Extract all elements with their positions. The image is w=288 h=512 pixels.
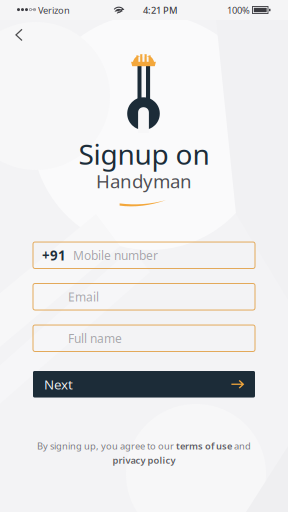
staticText: 100% — [227, 4, 250, 16]
staticText: Verizon — [38, 4, 70, 16]
staticText: Full name — [68, 330, 122, 346]
staticText: Signup on — [78, 135, 209, 173]
staticText: +91 — [42, 246, 66, 264]
staticText: Mobile number — [73, 247, 158, 263]
staticText: and — [232, 440, 251, 452]
staticText: By signing up, you agree to our — [37, 440, 176, 452]
button[interactable]: Full name — [33, 325, 255, 351]
button[interactable]: Back — [7, 25, 31, 45]
staticText: Handyman — [96, 169, 192, 193]
staticText: Next — [44, 375, 73, 393]
button[interactable]: privacy policy — [112, 454, 175, 466]
staticText: Email — [68, 289, 99, 305]
staticText: privacy policy — [112, 454, 175, 466]
staticText: 4:21 PM — [143, 4, 178, 16]
button[interactable]: Email — [33, 283, 255, 310]
staticText: terms of use — [176, 440, 232, 452]
button[interactable]: Next — [33, 371, 255, 397]
button[interactable]: +91 — [33, 242, 255, 268]
button[interactable]: terms of use — [176, 440, 232, 452]
